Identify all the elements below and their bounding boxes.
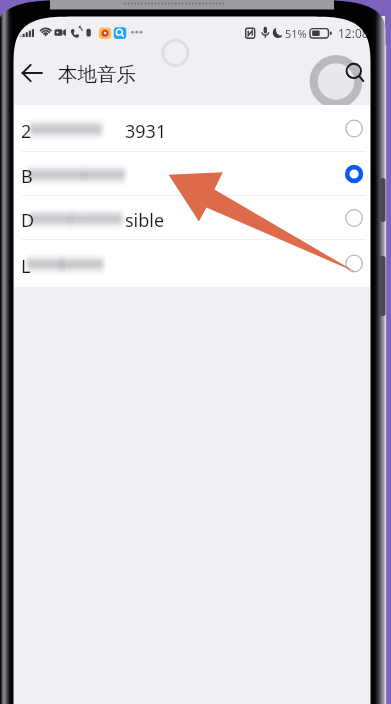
- staticText: 51%: [285, 26, 307, 41]
- button[interactable]: Search: [308, 54, 364, 110]
- staticText: 3931: [125, 119, 167, 144]
- button[interactable]: L: [14, 240, 371, 287]
- staticText: D: [21, 208, 35, 233]
- staticText: 2: [21, 119, 32, 144]
- staticText: B: [21, 164, 33, 189]
- staticText: 12:08: [338, 25, 369, 41]
- button[interactable]: D: [14, 196, 371, 240]
- staticText: sible: [125, 208, 165, 233]
- staticText: 本地音乐: [58, 62, 136, 87]
- button[interactable]: B: [14, 152, 371, 196]
- button[interactable]: Back: [15, 56, 49, 90]
- button[interactable]: 2: [14, 105, 371, 152]
- staticText: L: [21, 254, 31, 279]
